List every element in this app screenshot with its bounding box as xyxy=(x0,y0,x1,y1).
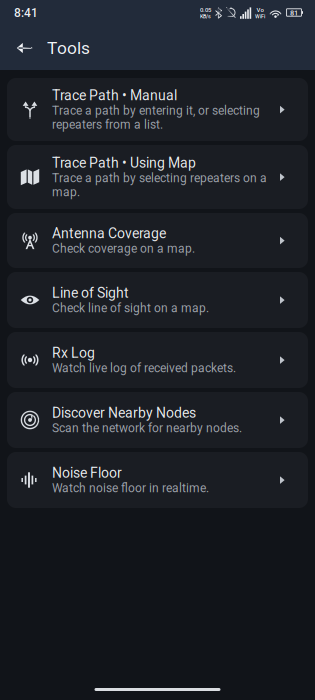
staticText: Trace Path • Manual xyxy=(52,87,177,104)
staticText: WiFi xyxy=(255,13,265,20)
button[interactable]: Rx Log xyxy=(7,332,308,388)
staticText: Antenna Coverage xyxy=(52,225,166,242)
button[interactable]: Trace Path • Using Map xyxy=(7,145,308,209)
button[interactable]: Trace Path • Manual xyxy=(7,78,308,141)
staticText: Vo xyxy=(256,6,263,13)
staticText: Trace Path • Using Map xyxy=(52,155,196,171)
button[interactable]: Back xyxy=(0,26,47,69)
staticText: 0.05 xyxy=(200,6,211,13)
button[interactable]: Antenna Coverage xyxy=(7,213,308,268)
staticText: Check line of sight on a map. xyxy=(52,301,209,315)
staticText: Discover Nearby Nodes xyxy=(52,405,196,421)
staticText: Watch noise floor in realtime. xyxy=(52,481,209,495)
button[interactable]: Discover Nearby Nodes xyxy=(7,392,308,448)
staticText: 8:41 xyxy=(14,6,38,20)
staticText: Scan the network for nearby nodes. xyxy=(52,421,242,435)
button[interactable]: Noise Floor xyxy=(7,452,308,508)
staticText: Rx Log xyxy=(52,345,95,361)
staticText: Check coverage on a map. xyxy=(52,242,195,256)
staticText: Line of Sight xyxy=(52,285,129,301)
staticText: Tools xyxy=(47,38,90,58)
staticText: 81 xyxy=(290,9,298,17)
staticText: Watch live log of received packets. xyxy=(52,361,236,375)
staticText: Noise Floor xyxy=(52,465,122,481)
staticText: KB/s xyxy=(200,13,211,20)
staticText: Trace a path by selecting repeaters on a… xyxy=(52,171,267,199)
button[interactable]: Line of Sight xyxy=(7,272,308,328)
staticText: Trace a path by entering it, or selectin… xyxy=(52,104,260,132)
